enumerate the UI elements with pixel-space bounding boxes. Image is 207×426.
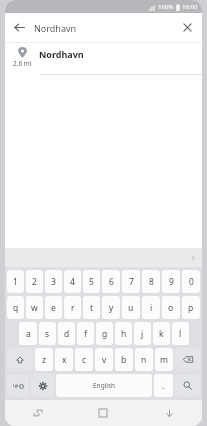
staticText: 10:00 xyxy=(182,3,198,11)
button[interactable]: n xyxy=(135,348,153,371)
button[interactable]: z xyxy=(35,348,53,371)
staticText: n xyxy=(141,354,147,366)
staticText: 1 xyxy=(13,276,18,288)
button[interactable]: e xyxy=(45,296,62,319)
staticText: 3 xyxy=(51,276,56,288)
button[interactable]: Search xyxy=(175,374,200,397)
staticText: 5 xyxy=(89,276,94,288)
button[interactable]: Back xyxy=(5,13,34,42)
staticText: a xyxy=(26,328,31,340)
button[interactable]: 9 xyxy=(162,270,180,293)
staticText: l xyxy=(179,328,182,340)
staticText: v xyxy=(102,354,107,366)
button[interactable]: 0 xyxy=(182,270,200,293)
button[interactable]: Home xyxy=(70,400,136,426)
button[interactable]: o xyxy=(162,296,180,319)
button[interactable]: 1 xyxy=(7,270,24,293)
staticText: 2.6 mi xyxy=(13,59,32,68)
staticText: m xyxy=(160,354,168,366)
button[interactable]: l xyxy=(172,322,189,345)
button[interactable]: Clear search xyxy=(173,13,202,42)
staticText: 4 xyxy=(70,276,75,288)
staticText: h xyxy=(121,328,127,340)
button[interactable]: 7 xyxy=(122,270,140,293)
button[interactable]: Shift xyxy=(7,348,33,371)
button[interactable]: English xyxy=(56,374,152,397)
button[interactable]: 6 xyxy=(102,270,120,293)
button[interactable]: w xyxy=(26,296,43,319)
button[interactable]: More suggestions xyxy=(183,248,202,267)
staticText: i xyxy=(150,302,153,314)
button[interactable]: s xyxy=(39,322,56,345)
button[interactable]: u xyxy=(122,296,140,319)
staticText: 2 xyxy=(32,276,37,288)
staticText: r xyxy=(71,302,75,314)
staticText: 100% xyxy=(158,3,174,11)
staticText: f xyxy=(84,328,87,340)
button[interactable]: y xyxy=(102,296,120,319)
button[interactable]: m xyxy=(155,348,173,371)
button[interactable]: b xyxy=(115,348,133,371)
button[interactable]: 2 xyxy=(26,270,43,293)
button[interactable]: f xyxy=(77,322,94,345)
button[interactable]: h xyxy=(115,322,132,345)
button[interactable]: g xyxy=(96,322,113,345)
staticText: p xyxy=(188,302,194,314)
button[interactable]: a xyxy=(19,322,37,345)
button[interactable]: Backspace xyxy=(175,348,200,371)
staticText: s xyxy=(45,328,50,340)
staticText: Nordhavn xyxy=(34,22,77,34)
button[interactable]: t xyxy=(83,296,100,319)
button[interactable]: p xyxy=(182,296,200,319)
staticText: e xyxy=(51,302,56,314)
button[interactable]: Recent apps xyxy=(5,400,70,426)
button[interactable]: c xyxy=(75,348,93,371)
button[interactable]: Nordhavn xyxy=(34,13,173,42)
button[interactable]: 5 xyxy=(83,270,100,293)
staticText: y xyxy=(109,302,114,314)
staticText: t xyxy=(90,302,94,314)
staticText: 9 xyxy=(169,276,174,288)
staticText: w xyxy=(31,302,38,314)
staticText: j xyxy=(141,328,144,340)
button[interactable]: Keyboard settings xyxy=(31,374,54,397)
staticText: English xyxy=(93,381,116,390)
staticText: g xyxy=(102,328,108,340)
staticText: u xyxy=(128,302,134,314)
button[interactable]: k xyxy=(153,322,170,345)
button[interactable]: r xyxy=(64,296,81,319)
button[interactable]: 4 xyxy=(64,270,81,293)
staticText: . xyxy=(162,380,165,392)
button[interactable]: d xyxy=(58,322,75,345)
staticText: q xyxy=(13,302,19,314)
button[interactable]: 3 xyxy=(45,270,62,293)
staticText: 8 xyxy=(149,276,154,288)
staticText: b xyxy=(121,354,127,366)
button[interactable]: Symbols and emoji xyxy=(7,374,29,397)
staticText: d xyxy=(64,328,70,340)
staticText: o xyxy=(168,302,174,314)
button[interactable]: q xyxy=(7,296,24,319)
staticText: 0 xyxy=(189,276,194,288)
button[interactable]: x xyxy=(55,348,73,371)
staticText: 6 xyxy=(109,276,114,288)
button[interactable]: v xyxy=(95,348,113,371)
staticText: z xyxy=(42,354,46,366)
staticText: c xyxy=(82,354,87,366)
button[interactable]: . xyxy=(154,374,173,397)
button[interactable]: Back xyxy=(136,400,202,426)
button[interactable]: 2.6 mi xyxy=(5,43,202,75)
button[interactable]: j xyxy=(134,322,151,345)
button[interactable]: 8 xyxy=(142,270,160,293)
button[interactable]: i xyxy=(142,296,160,319)
staticText: x xyxy=(62,354,67,366)
staticText: k xyxy=(159,328,164,340)
staticText: Nordhavn xyxy=(39,48,84,60)
staticText: !# xyxy=(13,382,19,390)
staticText: 7 xyxy=(129,276,134,288)
